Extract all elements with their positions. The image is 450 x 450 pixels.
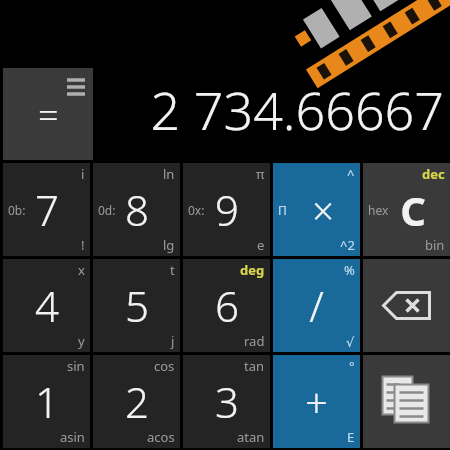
staticText: 0b: [8,202,26,218]
staticText: x [78,261,85,279]
button[interactable]: Equals [3,68,93,160]
button[interactable]: Divide [273,259,360,352]
staticText: 4 [35,277,59,334]
staticText: acos [147,428,175,446]
button[interactable]: Clear [363,163,450,256]
staticText: t [170,261,175,279]
staticText: deg [240,261,265,279]
staticText: bin [425,236,445,254]
button[interactable]: 8 [93,163,180,256]
staticText: dec [422,165,445,183]
staticText: + [305,375,328,429]
staticText: asin [60,428,85,446]
staticText: = [38,90,59,139]
staticText: 0x: [188,202,205,218]
button[interactable]: 2 [93,355,180,448]
staticText: 6 [215,277,239,334]
staticText: % [344,261,355,279]
staticText: lg [163,236,175,254]
staticText: j [171,332,175,350]
staticText: ^2 [340,236,355,254]
staticText: 8 [125,181,149,238]
staticText: e [257,236,265,254]
staticText: cos [154,357,175,375]
staticText: E [347,428,355,446]
staticText: 2 [125,373,149,430]
staticText: C [400,183,426,237]
button[interactable]: Copy [363,355,450,448]
staticText: 1 [35,373,59,430]
staticText: √ [346,335,355,350]
staticText: ! [81,236,85,254]
staticText: i [81,165,85,183]
button[interactable]: 3 [183,355,270,448]
staticText: ^ [347,165,355,183]
button[interactable]: 4 [3,259,90,352]
staticText: ° [349,357,355,375]
staticText: 7 [35,181,59,238]
staticText: y [78,332,85,350]
staticText: rad [244,332,265,350]
staticText: / [309,277,324,334]
staticText: sin [67,357,85,375]
staticText: ln [163,165,175,183]
staticText: 5 [125,277,149,334]
button[interactable]: Plus [273,355,360,448]
button[interactable]: Backspace [363,259,450,352]
button[interactable]: 6 [183,259,270,352]
button[interactable]: 1 [3,355,90,448]
staticText: tan [244,357,265,375]
staticText: × [312,184,334,236]
staticText: 3 [215,373,239,430]
staticText: 0d: [98,202,116,218]
staticText: hex [368,202,389,218]
button[interactable]: Multiply [273,163,360,256]
staticText: atan [237,428,265,446]
staticText: 2 734.66667 [150,74,444,145]
staticText: Π [278,202,287,218]
button[interactable]: 9 [183,163,270,256]
staticText: π [256,165,265,183]
button[interactable]: 5 [93,259,180,352]
staticText: 9 [215,181,239,238]
button[interactable]: 7 [3,163,90,256]
